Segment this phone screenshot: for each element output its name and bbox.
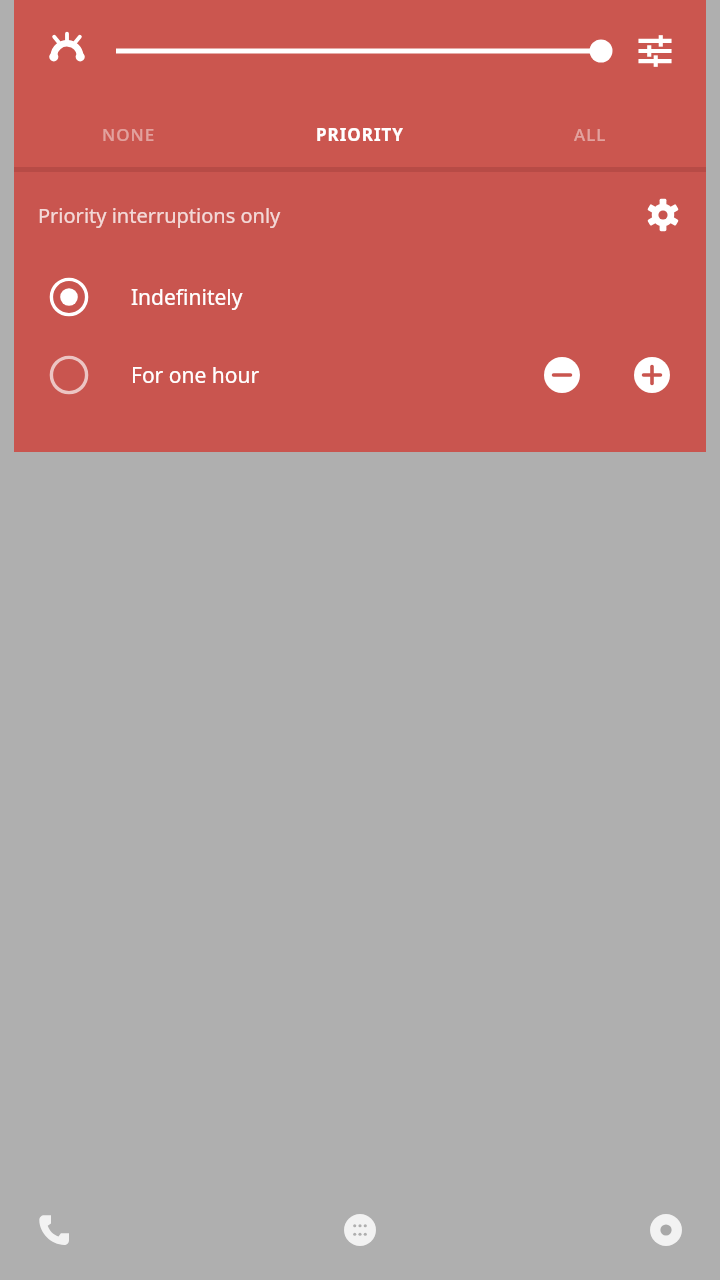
button[interactable]: Decrease bbox=[534, 347, 590, 403]
button[interactable]: All apps bbox=[330, 1200, 390, 1260]
button[interactable]: Settings bbox=[634, 186, 692, 244]
button[interactable]: NONE bbox=[14, 101, 244, 167]
staticText: For one hour bbox=[131, 361, 260, 390]
staticText: ALL bbox=[574, 123, 607, 146]
button[interactable]: Ringer volume bbox=[36, 20, 98, 82]
button[interactable]: Ring volume slider bbox=[116, 20, 614, 82]
button[interactable]: Sound settings bbox=[626, 22, 684, 80]
staticText: Priority interruptions only bbox=[38, 202, 281, 229]
button[interactable]: Camera bbox=[636, 1200, 696, 1260]
button[interactable]: PRIORITY bbox=[244, 101, 475, 167]
button[interactable]: For one hour bbox=[14, 336, 534, 414]
staticText: Indefinitely bbox=[131, 283, 243, 312]
button[interactable]: Indefinitely bbox=[14, 258, 706, 336]
button[interactable]: ALL bbox=[475, 101, 706, 167]
staticText: NONE bbox=[102, 123, 156, 146]
button[interactable]: Increase bbox=[624, 347, 680, 403]
staticText: PRIORITY bbox=[316, 123, 404, 146]
button[interactable]: Phone bbox=[24, 1200, 84, 1260]
